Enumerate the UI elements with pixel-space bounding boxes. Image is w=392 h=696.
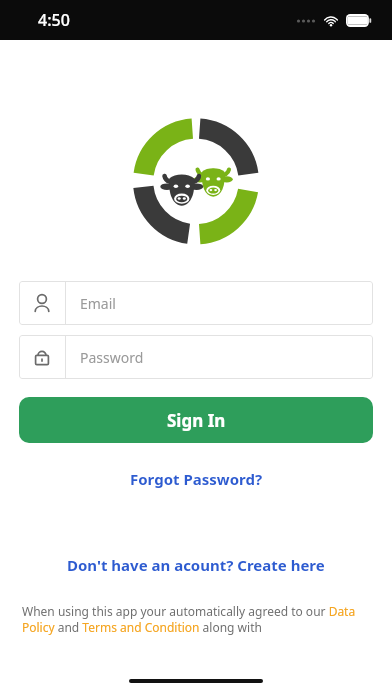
staticText: Sign In	[167, 409, 226, 432]
staticText: Forgot Password?	[130, 469, 263, 489]
button[interactable]: Sign In	[19, 397, 373, 443]
staticText: Email	[80, 294, 116, 313]
button[interactable]: When using this app your automatically a…	[22, 603, 370, 636]
staticText: 4:50	[38, 9, 70, 31]
staticText: Password	[80, 348, 144, 367]
button[interactable]: Don't have an acount? Create here	[55, 551, 337, 579]
staticText: Don't have an acount? Create here	[67, 555, 325, 575]
staticText: When using this app your automatically a…	[22, 603, 370, 636]
button[interactable]: Password	[19, 335, 373, 379]
button[interactable]: Email	[19, 281, 373, 325]
button[interactable]: Forgot Password?	[118, 465, 275, 493]
